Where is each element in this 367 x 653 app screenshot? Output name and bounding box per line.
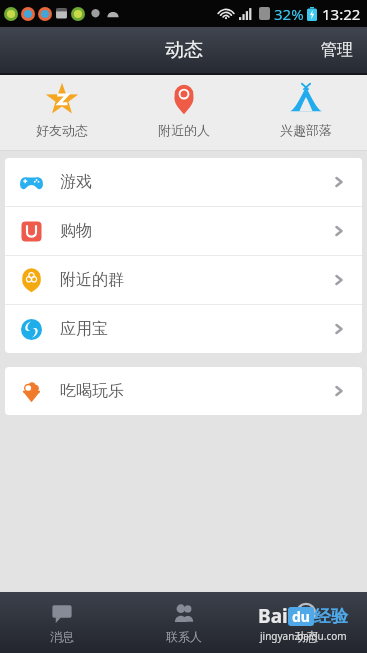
staticText: 动态 bbox=[294, 629, 318, 644]
button[interactable]: 附近的人 bbox=[123, 75, 245, 150]
button[interactable]: 应用宝 bbox=[5, 305, 362, 353]
button[interactable]: 管理 bbox=[307, 27, 367, 73]
staticText: 应用宝 bbox=[60, 319, 108, 339]
staticText: 购物 bbox=[60, 221, 92, 241]
staticText: 好友动态 bbox=[36, 122, 88, 138]
staticText: 附近的人 bbox=[158, 122, 210, 138]
staticText: 32% bbox=[274, 4, 304, 24]
button[interactable]: 动态 bbox=[245, 592, 367, 653]
button[interactable]: 购物 bbox=[5, 207, 362, 255]
button[interactable]: 兴趣部落 bbox=[245, 75, 367, 150]
staticText: jingyan.baidu.com bbox=[260, 629, 347, 643]
staticText: 兴趣部落 bbox=[280, 122, 332, 138]
button[interactable]: 联系人 bbox=[123, 592, 245, 653]
staticText: 管理 bbox=[321, 40, 353, 60]
button[interactable]: 附近的群 bbox=[5, 256, 362, 304]
staticText: 附近的群 bbox=[60, 270, 124, 290]
button[interactable]: 游戏 bbox=[5, 158, 362, 206]
staticText: 消息 bbox=[50, 629, 74, 644]
button[interactable]: 吃喝玩乐 bbox=[5, 367, 362, 415]
staticText: 13:22 bbox=[322, 4, 361, 24]
staticText: du bbox=[292, 607, 310, 626]
staticText: 经验 bbox=[314, 606, 348, 627]
staticText: Bai bbox=[258, 603, 288, 629]
button[interactable]: 好友动态 bbox=[0, 75, 123, 150]
button[interactable]: 消息 bbox=[0, 592, 123, 653]
staticText: 吃喝玩乐 bbox=[60, 381, 124, 401]
staticText: 联系人 bbox=[166, 629, 202, 644]
staticText: 动态 bbox=[165, 38, 203, 62]
staticText: 游戏 bbox=[60, 172, 92, 192]
